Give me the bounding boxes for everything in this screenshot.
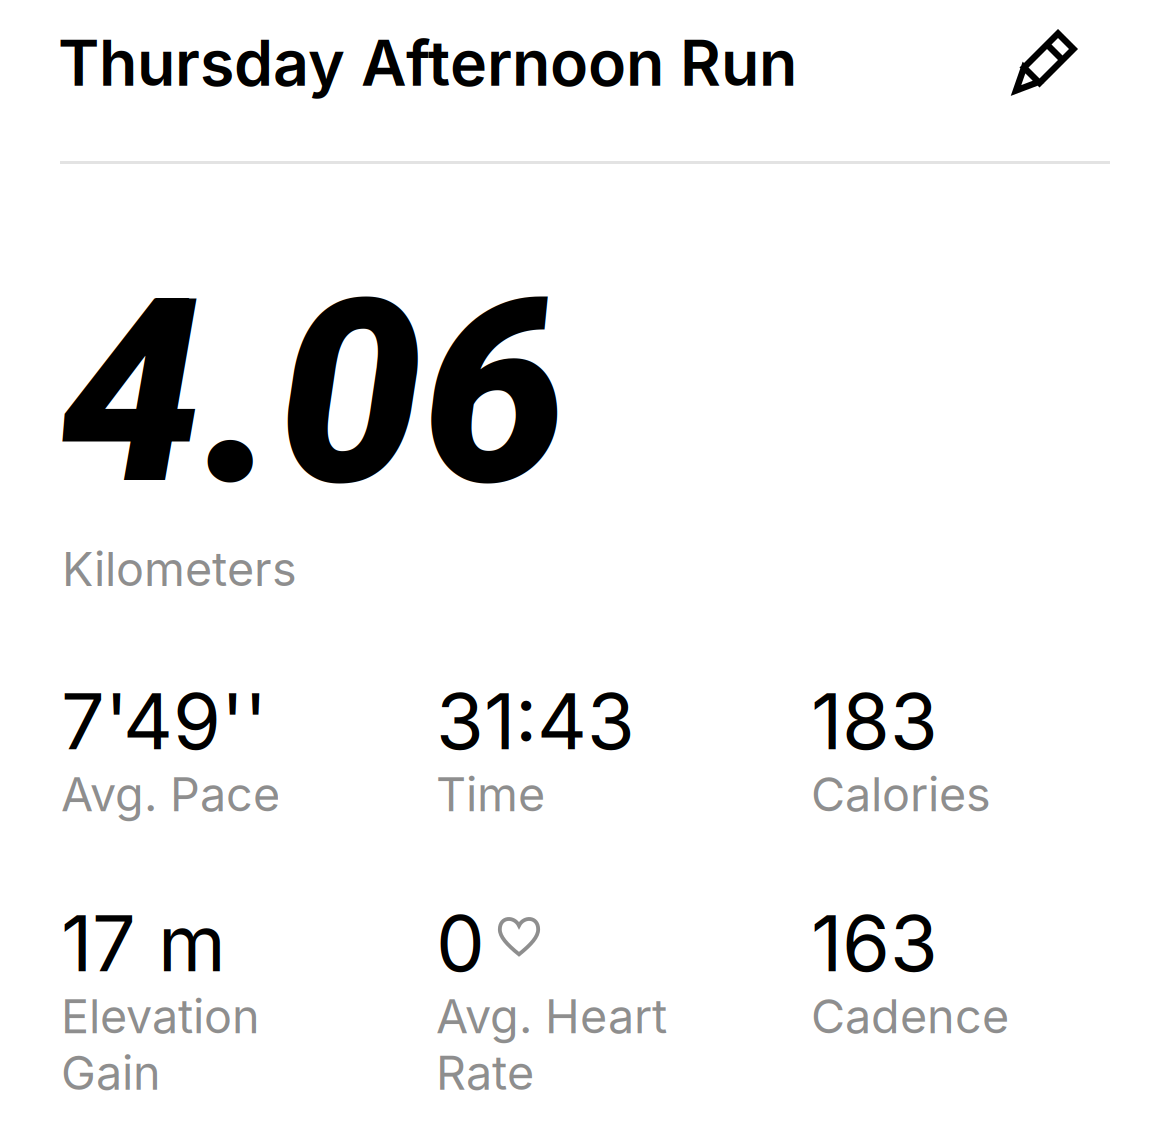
staticText: 17 m xyxy=(61,896,226,990)
staticText: Avg. Pace xyxy=(61,766,280,822)
button[interactable]: Thursday Afternoon Run xyxy=(58,15,818,111)
staticText: 7'49'' xyxy=(61,674,267,768)
staticText: Cadence xyxy=(811,988,1009,1044)
button[interactable]: Edit xyxy=(997,14,1093,110)
staticText: Calories xyxy=(811,766,991,822)
staticText: Avg. Heart Rate xyxy=(436,988,667,1101)
staticText: 4.06 xyxy=(59,243,566,543)
staticText: 0 xyxy=(436,896,485,990)
staticText: Time xyxy=(436,766,545,822)
staticText: 183 xyxy=(811,674,938,768)
staticText: Thursday Afternoon Run xyxy=(58,25,797,101)
staticText: 163 xyxy=(811,896,938,990)
staticText: Elevation Gain xyxy=(61,988,260,1101)
staticText: Kilometers xyxy=(62,541,297,597)
staticText: 31:43 xyxy=(436,674,635,768)
